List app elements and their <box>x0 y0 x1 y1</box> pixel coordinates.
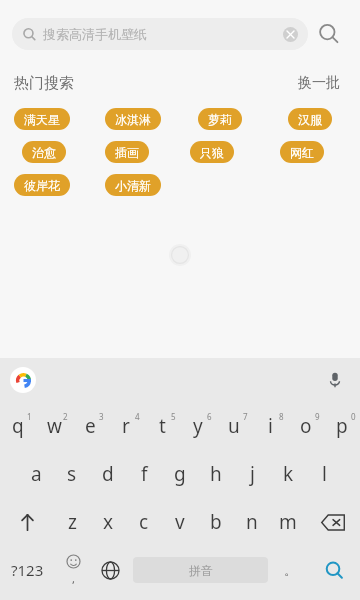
button[interactable]: Clear <box>283 27 298 42</box>
staticText: y <box>193 413 203 439</box>
staticText: l <box>322 461 327 487</box>
button[interactable]: 网红 <box>280 141 324 163</box>
button[interactable]: u <box>216 402 252 450</box>
staticText: k <box>283 461 294 487</box>
staticText: c <box>139 509 149 535</box>
button[interactable]: b <box>198 498 234 546</box>
button[interactable]: q <box>0 402 36 450</box>
button[interactable]: 插画 <box>105 141 149 163</box>
staticText: z <box>68 509 77 535</box>
button[interactable]: 。 <box>272 546 309 594</box>
staticText: v <box>175 509 185 535</box>
staticText: 拼音 <box>189 563 213 578</box>
button[interactable]: 冰淇淋 <box>105 108 161 130</box>
button[interactable]: a <box>18 450 54 498</box>
button[interactable]: Backspace <box>306 498 360 546</box>
button[interactable]: Google <box>10 367 36 393</box>
button[interactable]: c <box>126 498 162 546</box>
button[interactable]: 只狼 <box>190 141 234 163</box>
staticText: ?123 <box>11 560 44 580</box>
button[interactable]: x <box>90 498 126 546</box>
button[interactable]: l <box>306 450 342 498</box>
staticText: 6 <box>207 411 212 422</box>
staticText: 1 <box>27 411 32 422</box>
button[interactable]: Shift <box>0 498 54 546</box>
staticText: s <box>67 461 77 487</box>
button[interactable]: y <box>180 402 216 450</box>
staticText: r <box>122 413 130 439</box>
button[interactable]: Search <box>309 546 360 594</box>
button[interactable]: 彼岸花 <box>14 174 70 196</box>
staticText: 小清新 <box>115 178 151 193</box>
staticText: 插画 <box>115 145 139 160</box>
staticText: 网红 <box>290 145 314 160</box>
button[interactable]: h <box>198 450 234 498</box>
staticText: 5 <box>171 411 176 422</box>
button[interactable]: m <box>270 498 306 546</box>
button[interactable]: f <box>126 450 162 498</box>
staticText: 9 <box>315 411 320 422</box>
staticText: 彼岸花 <box>24 178 60 193</box>
staticText: 热门搜索 <box>14 74 74 93</box>
button[interactable]: o <box>288 402 324 450</box>
staticText: 2 <box>63 411 68 422</box>
staticText: 换一批 <box>298 74 340 92</box>
staticText: j <box>250 461 255 487</box>
staticText: 3 <box>99 411 104 422</box>
button[interactable]: 满天星 <box>14 108 70 130</box>
button[interactable]: k <box>270 450 306 498</box>
staticText: 萝莉 <box>208 112 232 127</box>
button[interactable]: Voice input <box>320 365 350 395</box>
button[interactable]: s <box>54 450 90 498</box>
staticText: 0 <box>351 411 356 422</box>
button[interactable]: w <box>36 402 72 450</box>
staticText: , <box>72 571 75 586</box>
button[interactable]: z <box>54 498 90 546</box>
button[interactable]: 拼音 <box>133 557 268 583</box>
button[interactable]: 搜索高清手机壁纸 <box>12 18 308 50</box>
button[interactable]: 萝莉 <box>198 108 242 130</box>
button[interactable]: t <box>144 402 180 450</box>
button[interactable]: d <box>90 450 126 498</box>
staticText: o <box>300 413 312 439</box>
staticText: 满天星 <box>24 112 60 127</box>
button[interactable]: Search <box>308 13 350 55</box>
staticText: t <box>159 413 166 439</box>
button[interactable]: j <box>234 450 270 498</box>
button[interactable]: 汉服 <box>288 108 332 130</box>
button[interactable]: g <box>162 450 198 498</box>
staticText: a <box>31 461 42 487</box>
button[interactable]: Switch language <box>92 546 129 594</box>
staticText: p <box>336 413 348 439</box>
button[interactable]: 治愈 <box>22 141 66 163</box>
staticText: n <box>246 509 258 535</box>
staticText: w <box>47 413 62 439</box>
button[interactable]: Emoji <box>55 546 92 594</box>
staticText: g <box>174 461 186 487</box>
button[interactable]: r <box>108 402 144 450</box>
button[interactable]: i <box>252 402 288 450</box>
button[interactable]: n <box>234 498 270 546</box>
staticText: u <box>228 413 240 439</box>
staticText: h <box>210 461 222 487</box>
staticText: 治愈 <box>32 145 56 160</box>
staticText: 搜索高清手机壁纸 <box>43 26 283 42</box>
button[interactable]: 换一批 <box>294 70 344 96</box>
staticText: 7 <box>243 411 248 422</box>
staticText: f <box>141 461 148 487</box>
staticText: b <box>210 509 222 535</box>
button[interactable]: 小清新 <box>105 174 161 196</box>
staticText: 8 <box>279 411 284 422</box>
button[interactable]: p <box>324 402 360 450</box>
staticText: q <box>12 413 24 439</box>
staticText: 只狼 <box>200 145 224 160</box>
button[interactable]: v <box>162 498 198 546</box>
button[interactable]: ?123 <box>0 546 55 594</box>
staticText: 冰淇淋 <box>115 112 151 127</box>
staticText: 4 <box>135 411 140 422</box>
staticText: 汉服 <box>298 112 322 127</box>
button[interactable]: e <box>72 402 108 450</box>
staticText: i <box>268 413 273 439</box>
staticText: 。 <box>284 562 297 578</box>
staticText: e <box>85 413 96 439</box>
